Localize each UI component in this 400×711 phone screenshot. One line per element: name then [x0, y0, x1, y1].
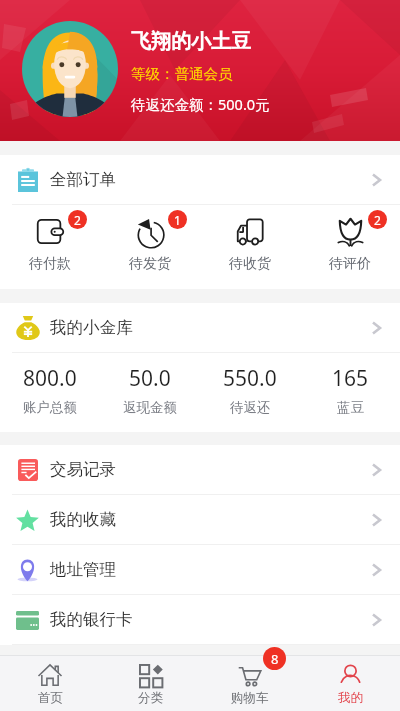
button[interactable]: 2 — [300, 205, 400, 273]
staticText: 待发货 — [129, 255, 171, 273]
staticText: 我的收藏 — [50, 509, 116, 530]
staticText: 我的小金库 — [50, 317, 133, 338]
button[interactable]: 分类 — [100, 656, 200, 706]
staticText: 购物车 — [231, 690, 269, 706]
button[interactable]: 我的小金库 — [0, 303, 400, 352]
staticText: 交易记录 — [50, 459, 116, 480]
staticText: 待收货 — [229, 255, 271, 273]
staticText: 待评价 — [329, 255, 371, 273]
staticText: 地址管理 — [50, 559, 116, 580]
button[interactable]: 我的收藏 — [0, 495, 400, 544]
staticText: 我的银行卡 — [50, 609, 133, 630]
other: 购物车 — [238, 663, 262, 687]
button[interactable]: 165 — [300, 353, 400, 416]
button[interactable]: 800.0 — [0, 353, 100, 416]
button[interactable]: 550.0 — [200, 353, 300, 416]
staticText: 50.0 — [129, 364, 171, 393]
staticText: 首页 — [38, 690, 63, 706]
staticText: 2 — [374, 212, 381, 228]
button[interactable]: 1 — [100, 205, 200, 273]
staticText: 账户总额 — [23, 399, 77, 416]
staticText: 蓝豆 — [337, 399, 364, 416]
staticText: 待返还金额：500.0元 — [131, 94, 270, 114]
button[interactable]: 50.0 — [100, 353, 200, 416]
button[interactable]: 全部订单 — [0, 155, 400, 204]
staticText: 待付款 — [29, 255, 71, 273]
other: 首页 — [38, 663, 62, 687]
other: 分类 — [139, 664, 162, 687]
staticText: 550.0 — [223, 364, 277, 393]
staticText: 全部订单 — [50, 169, 116, 190]
staticText: 1 — [174, 212, 181, 228]
button[interactable]: 首页 — [0, 656, 100, 706]
other: 我的 — [339, 664, 362, 687]
staticText: 等级：普通会员 — [131, 65, 233, 83]
button[interactable]: 我的 — [300, 656, 400, 706]
button[interactable]: 购物车 — [200, 656, 300, 706]
staticText: 800.0 — [23, 364, 77, 393]
staticText: 2 — [74, 212, 81, 228]
button[interactable]: 地址管理 — [0, 545, 400, 594]
button[interactable]: 2 — [0, 205, 100, 273]
staticText: 分类 — [138, 690, 163, 706]
button[interactable]: 待收货 — [200, 205, 300, 273]
staticText: 165 — [332, 364, 369, 393]
staticText: 飞翔的小土豆 — [131, 29, 251, 54]
button[interactable]: 我的银行卡 — [0, 595, 400, 644]
staticText: 8 — [271, 650, 279, 668]
staticText: 待返还 — [230, 399, 271, 416]
button[interactable]: 交易记录 — [0, 445, 400, 494]
staticText: 返现金额 — [123, 399, 177, 416]
staticText: 我的 — [338, 690, 363, 706]
